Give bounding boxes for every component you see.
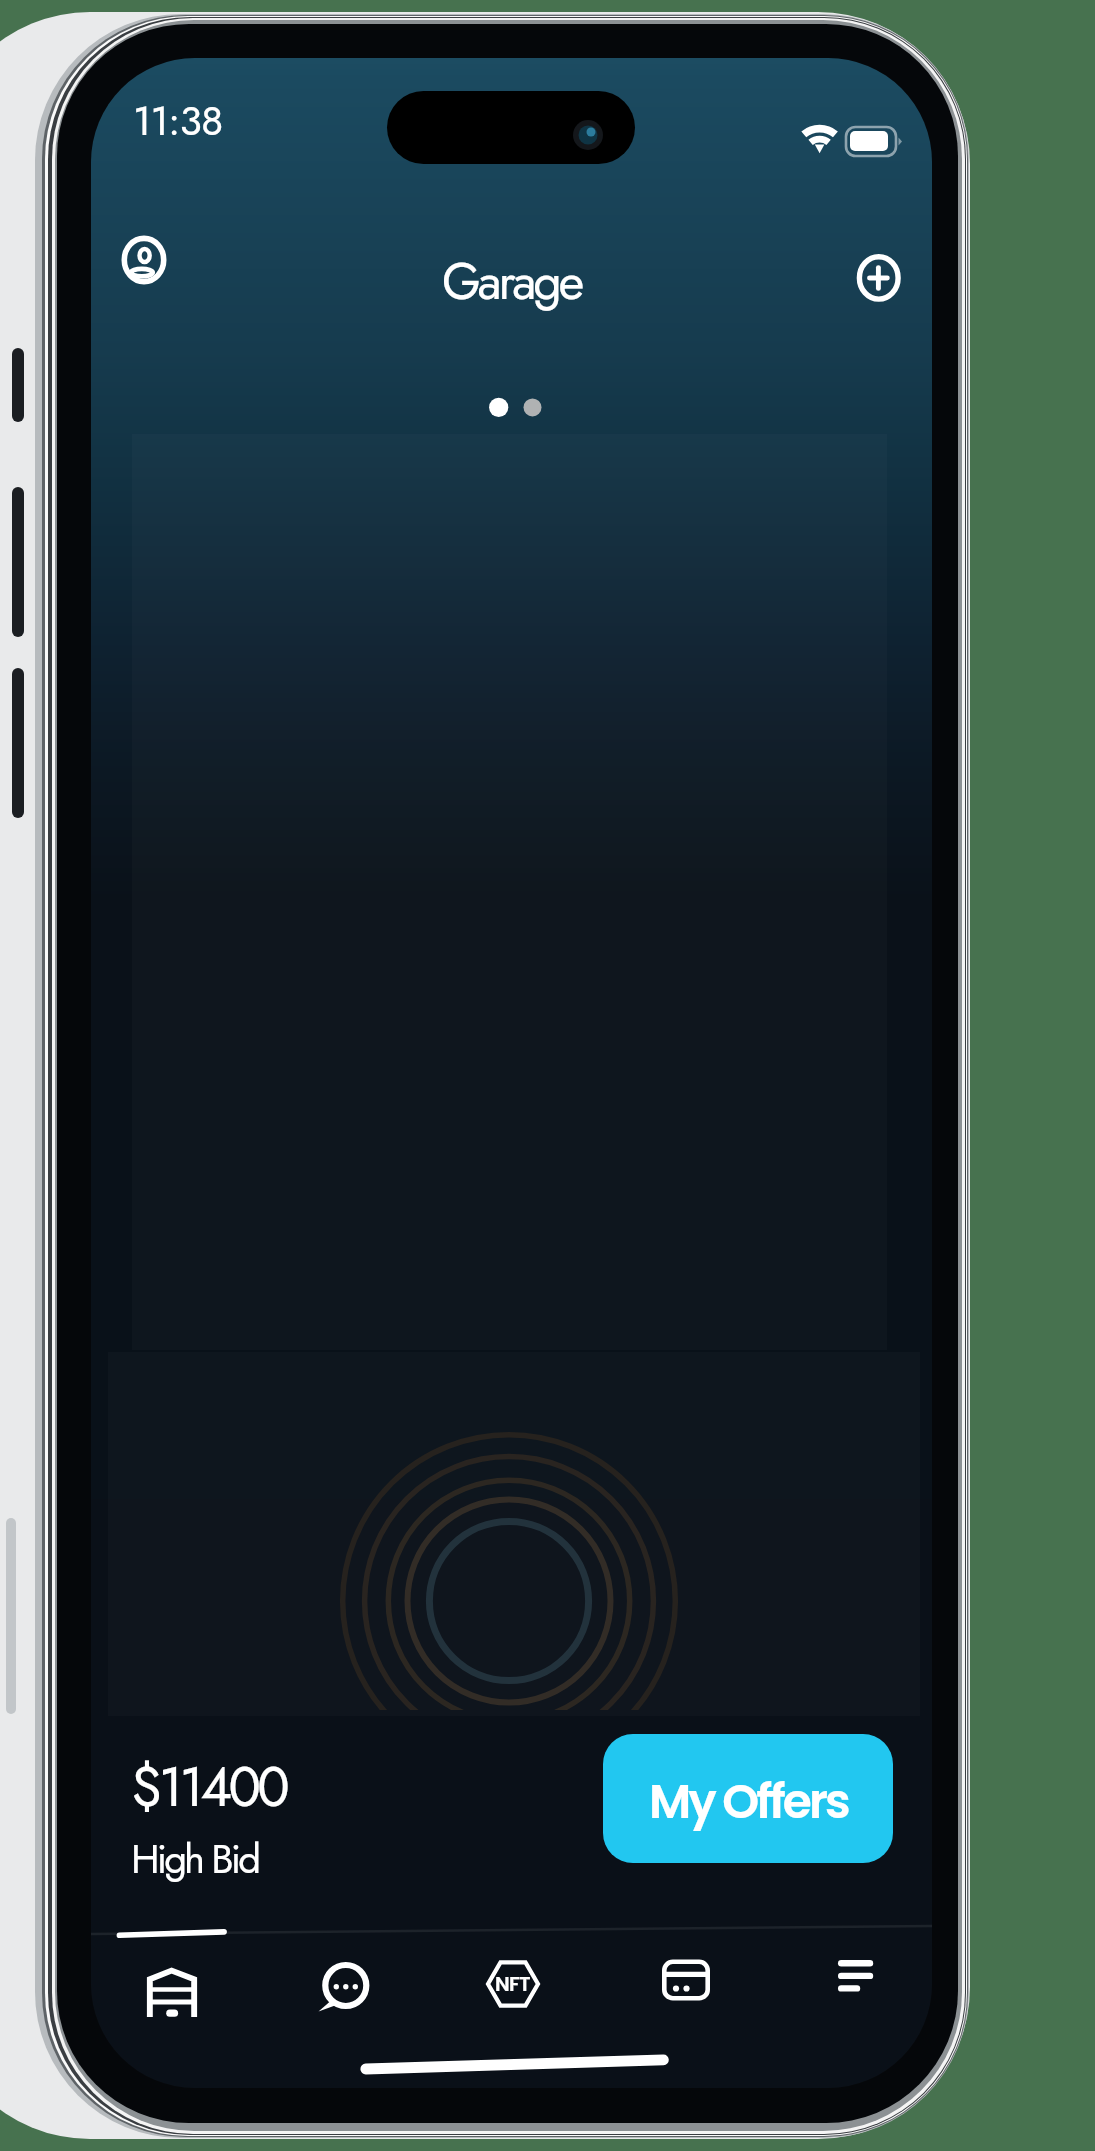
staticText: NFT	[495, 1970, 531, 1998]
button[interactable]: Menu	[764, 1948, 932, 2043]
button[interactable]: Account	[116, 230, 172, 286]
staticText: My Offers	[649, 1769, 848, 1835]
staticText: Garage	[442, 245, 582, 317]
button[interactable]: Messages	[260, 1948, 428, 2043]
button[interactable]: Garage	[91, 1948, 260, 2043]
staticText: 11:38	[133, 91, 223, 150]
button[interactable]: Wallet	[596, 1948, 764, 2043]
button[interactable]: Add vehicle	[852, 250, 905, 303]
button[interactable]: NFT marketplace	[428, 1948, 596, 2043]
button[interactable]: My Offers	[603, 1734, 893, 1863]
staticText: $11400	[131, 1748, 287, 1826]
staticText: High Bid	[131, 1830, 259, 1888]
